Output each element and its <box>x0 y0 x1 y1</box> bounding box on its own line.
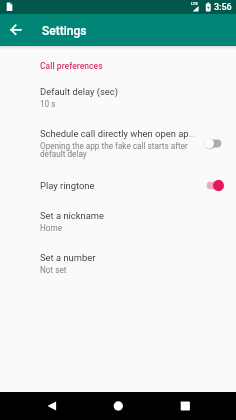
staticText: Set a number <box>40 252 96 263</box>
button[interactable]: Switch off <box>204 137 222 150</box>
button[interactable]: Navigate up <box>6 20 26 40</box>
button[interactable]: Recent apps <box>173 394 197 418</box>
button[interactable]: Set a nickname <box>0 208 236 237</box>
button[interactable]: Schedule call directly when open ap… <box>0 126 236 163</box>
staticText: LTE <box>191 1 198 6</box>
button[interactable]: Home <box>106 394 130 418</box>
staticText: 10 s <box>40 99 56 109</box>
button[interactable]: Play ringtone <box>0 177 236 198</box>
button[interactable]: Default delay (sec) <box>0 84 236 113</box>
button[interactable]: Back <box>40 394 64 418</box>
staticText: 3:56 <box>214 2 232 13</box>
staticText: Call preferences <box>40 61 103 71</box>
staticText: Play ringtone <box>40 180 95 191</box>
staticText: Settings <box>42 24 87 38</box>
staticText: Opening the app the fake call starts aft… <box>40 141 188 159</box>
staticText: Not set <box>40 265 67 275</box>
staticText: Default delay (sec) <box>40 86 118 97</box>
button[interactable]: Switch on <box>206 179 224 192</box>
staticText: Home <box>40 223 63 233</box>
button[interactable]: Set a number <box>0 250 236 279</box>
staticText: Schedule call directly when open ap… <box>40 128 195 139</box>
staticText: Set a nickname <box>40 210 105 221</box>
